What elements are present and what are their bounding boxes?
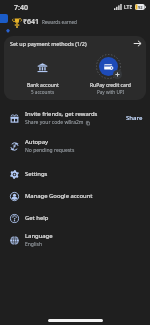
staticText: Get help xyxy=(25,214,49,222)
staticText: English xyxy=(25,241,43,248)
staticText: Bank account xyxy=(27,82,59,89)
button[interactable]: Settings xyxy=(0,164,150,184)
staticText: Pay with UPI xyxy=(97,89,125,95)
staticText: Share xyxy=(126,114,143,122)
button[interactable]: Invite friends, get rewards xyxy=(0,107,150,129)
button[interactable]: Share xyxy=(122,111,147,125)
button[interactable]: Get help xyxy=(0,208,150,228)
staticText: Autopay xyxy=(25,138,49,146)
staticText: Language xyxy=(25,232,53,240)
staticText: Invite friends, get rewards xyxy=(25,110,98,118)
staticText: Share your code w8ra2m xyxy=(25,119,84,126)
staticText: ₹641 xyxy=(23,17,40,27)
staticText: 5 accounts xyxy=(31,89,55,95)
button[interactable]: Bank account xyxy=(7,54,78,95)
staticText: 7:40 xyxy=(14,3,28,13)
staticText: Rewards earned xyxy=(42,19,77,25)
staticText: RuPay credit card xyxy=(90,82,131,89)
button[interactable]: Manage Google account xyxy=(0,186,150,206)
staticText: Manage Google account xyxy=(25,192,93,200)
button[interactable]: Autopay xyxy=(0,135,150,157)
staticText: No pending requests xyxy=(25,147,75,154)
button[interactable]: ₹641 xyxy=(12,16,77,28)
button[interactable]: Language xyxy=(0,229,150,251)
other: Open xyxy=(133,39,142,48)
staticText: 92 xyxy=(138,5,143,10)
staticText: Set up payment methods (1/2) xyxy=(10,40,133,47)
button[interactable]: RuPay credit card xyxy=(75,54,146,95)
staticText: Settings xyxy=(25,170,48,178)
staticText: LTE xyxy=(124,4,133,11)
button[interactable]: Set up payment methods (1/2) xyxy=(4,36,146,50)
